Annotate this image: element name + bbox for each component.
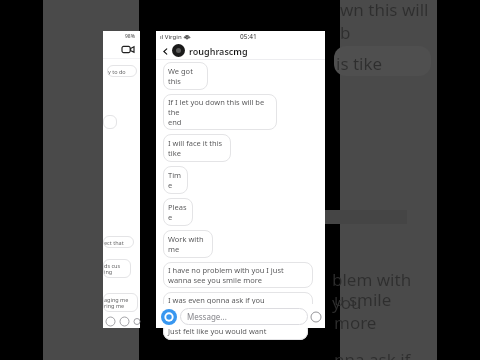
staticText: nna ask if yo: [334, 348, 431, 360]
button[interactable]: If I let you down this will be the end: [163, 94, 277, 130]
staticText: blem with you: [332, 268, 429, 314]
button[interactable]: y to do: [107, 65, 137, 77]
button[interactable]: Just felt like you would want: [163, 322, 308, 340]
staticText: u smile more: [334, 288, 431, 334]
button[interactable]: Camera: [160, 308, 177, 325]
staticText: ıl Virgin: [160, 33, 182, 41]
button[interactable]: ect that: [103, 236, 134, 248]
button[interactable]: roughrascmg: [189, 45, 248, 57]
staticText: We got this: [168, 66, 203, 86]
staticText: I will face it this tike: [168, 138, 226, 158]
button[interactable]: I will face it this tike: [163, 134, 231, 162]
staticText: aging me ring me: [104, 296, 129, 310]
button[interactable]: I was even gonna ask if you wanna be my …: [163, 292, 313, 318]
staticText: is tike: [336, 52, 383, 75]
button[interactable]: Gallery: [310, 311, 321, 322]
staticText: Message...: [187, 311, 227, 322]
staticText: 05:41: [240, 32, 257, 41]
other: Video call: [122, 45, 134, 54]
button[interactable]: Message...: [180, 308, 308, 325]
button[interactable]: Back: [159, 45, 171, 57]
staticText: wn this will b: [340, 0, 437, 44]
button[interactable]: Work with me: [163, 230, 213, 258]
staticText: I was even gonna ask if you wanna be my …: [168, 295, 265, 315]
button[interactable]: We got this: [163, 62, 208, 90]
staticText: y to do: [108, 68, 126, 75]
staticText: Time: [168, 170, 183, 190]
staticText: Work with me: [168, 234, 208, 254]
button[interactable]: aging me ring me: [103, 293, 138, 312]
staticText: Please: [168, 202, 188, 222]
button[interactable]: Time: [163, 166, 188, 194]
staticText: I have no problem with you I just wanna …: [168, 265, 284, 285]
staticText: ect that: [104, 239, 124, 246]
staticText: Just felt like you would want: [168, 326, 267, 336]
staticText: If I let you down this will be the end: [168, 97, 272, 127]
button[interactable]: I have no problem with you I just wanna …: [163, 262, 313, 288]
staticText: 98%: [125, 33, 135, 40]
staticText: ds cus ing: [104, 262, 121, 276]
button[interactable]: ds cus ing: [103, 259, 131, 278]
button[interactable]: [103, 115, 117, 129]
button[interactable]: Please: [163, 198, 193, 226]
